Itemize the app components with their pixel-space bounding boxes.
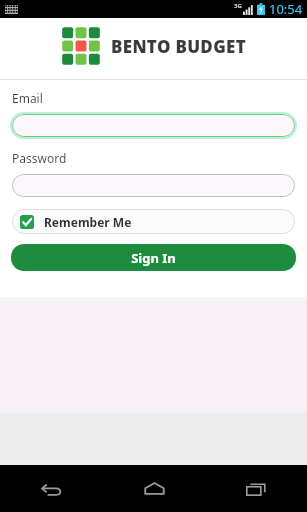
staticText: Password <box>12 150 67 166</box>
staticText: Sign In <box>131 249 176 267</box>
button[interactable]: Remember Me <box>12 209 295 234</box>
staticText: BENTO BUDGET <box>111 35 247 58</box>
button[interactable]: Sign In <box>11 244 296 271</box>
button[interactable]: Home <box>103 465 205 512</box>
button[interactable]: Back <box>0 465 103 512</box>
button[interactable]: Recent apps <box>205 465 307 512</box>
button[interactable] <box>12 174 295 197</box>
staticText: 10:54 <box>269 0 303 18</box>
button[interactable] <box>12 114 295 137</box>
staticText: Remember Me <box>44 214 132 230</box>
staticText: Email <box>12 90 43 106</box>
staticText: 3G <box>234 2 242 10</box>
